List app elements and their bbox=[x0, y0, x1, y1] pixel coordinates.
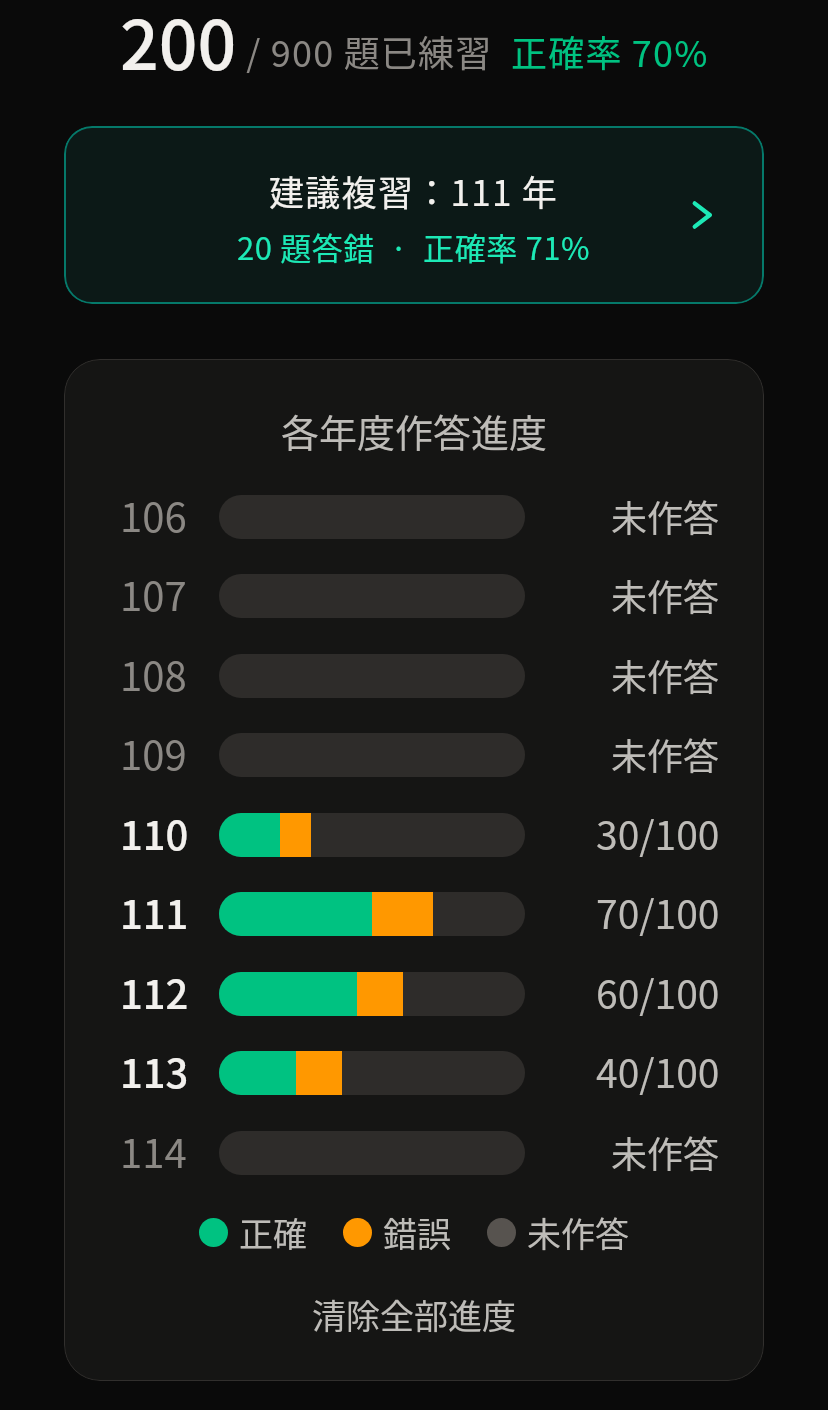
staticText: 清除全部進度 bbox=[64, 1290, 764, 1339]
staticText: 建議複習：111 年 bbox=[269, 165, 559, 216]
staticText: 未作答 bbox=[611, 490, 720, 542]
button[interactable]: 107 bbox=[64, 562, 764, 630]
staticText: 正確率 70% bbox=[511, 25, 709, 77]
staticText: 未作答 bbox=[611, 728, 720, 780]
staticText: 112 bbox=[120, 963, 189, 1021]
staticText: 30/100 bbox=[596, 805, 720, 861]
staticText: 未作答 bbox=[527, 1208, 629, 1257]
staticText: 113 bbox=[120, 1042, 189, 1100]
staticText: 各年度作答進度 bbox=[64, 403, 764, 458]
staticText: 40/100 bbox=[596, 1043, 720, 1099]
button[interactable]: 109 bbox=[64, 721, 764, 789]
staticText: 正確 bbox=[239, 1208, 307, 1257]
staticText: 200 bbox=[120, 0, 237, 89]
button[interactable]: 110 bbox=[64, 801, 764, 869]
staticText: 70/100 bbox=[596, 884, 720, 940]
button[interactable]: 清除全部進度 bbox=[64, 1290, 764, 1339]
staticText: 錯誤 bbox=[383, 1208, 451, 1257]
button[interactable]: 106 bbox=[64, 483, 764, 551]
button[interactable]: 111 bbox=[64, 880, 764, 948]
staticText: 106 bbox=[120, 486, 187, 544]
staticText: 108 bbox=[120, 645, 187, 703]
button[interactable]: 108 bbox=[64, 642, 764, 710]
staticText: / 900 題已練習 bbox=[237, 25, 511, 77]
staticText: 109 bbox=[120, 724, 187, 782]
staticText: 114 bbox=[120, 1122, 187, 1180]
staticText: 20 題答錯 · 正確率 71% bbox=[237, 224, 591, 269]
button[interactable]: 113 bbox=[64, 1039, 764, 1107]
staticText: 107 bbox=[120, 565, 187, 623]
staticText: 111 bbox=[120, 883, 189, 941]
button[interactable]: 112 bbox=[64, 960, 764, 1028]
staticText: 未作答 bbox=[611, 649, 720, 701]
button[interactable]: 114 bbox=[64, 1119, 764, 1187]
staticText: 60/100 bbox=[596, 964, 720, 1020]
button[interactable]: 建議複習：111 年 bbox=[64, 126, 764, 304]
staticText: 未作答 bbox=[611, 569, 720, 621]
staticText: 110 bbox=[120, 804, 189, 862]
other: 查看建議複習年份 bbox=[690, 202, 716, 228]
staticText: 未作答 bbox=[611, 1126, 720, 1178]
